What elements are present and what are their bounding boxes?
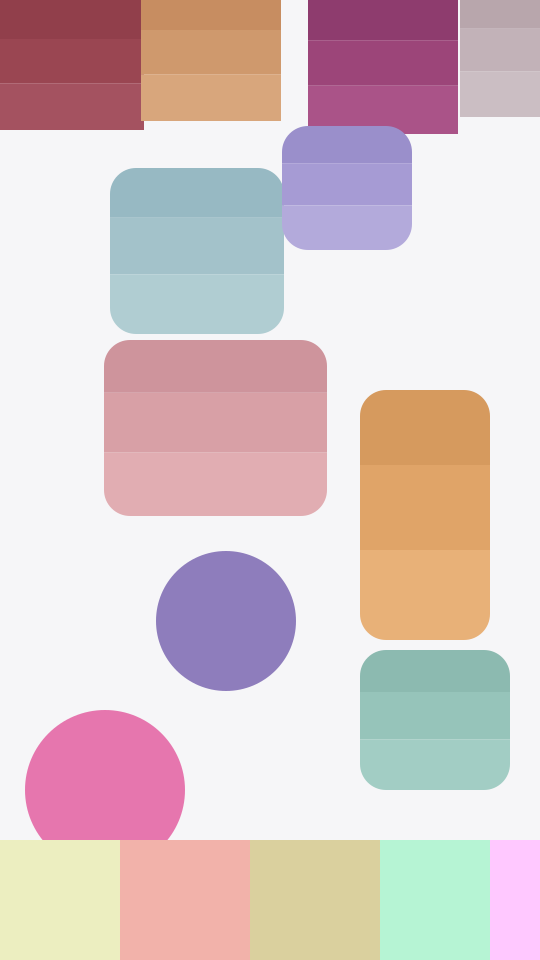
button[interactable]: Photo, crimson <box>0 0 144 130</box>
button[interactable]: Photo, dusk <box>282 126 412 250</box>
button[interactable]: Photo, canyon <box>360 390 490 640</box>
button[interactable]: Photo, lagoon <box>360 650 510 790</box>
button[interactable]: Photo, amber <box>141 0 281 121</box>
button[interactable]: Photo, plum <box>308 0 458 134</box>
button[interactable]: Photo, blossom <box>104 340 327 516</box>
button[interactable]: Photo, peony <box>10 710 200 870</box>
button[interactable]: Photo, stone <box>460 0 540 117</box>
button[interactable]: Photo, harbour <box>110 168 284 334</box>
button[interactable]: Photo, iris <box>156 551 296 691</box>
